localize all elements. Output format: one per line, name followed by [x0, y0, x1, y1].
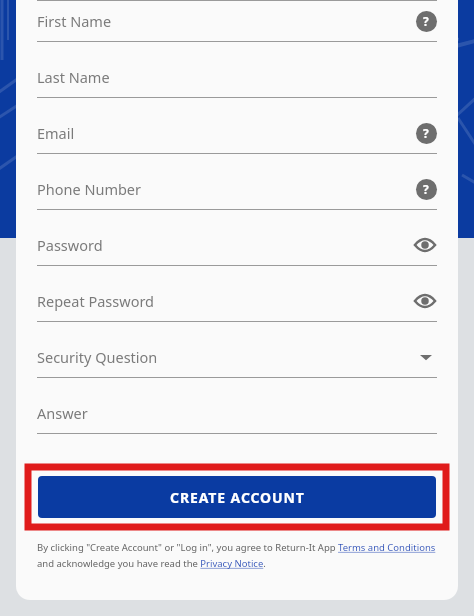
staticText: Phone Number [37, 179, 142, 199]
button[interactable]: First Name [16, 1, 458, 57]
button[interactable]: Phone Number [16, 169, 458, 225]
button[interactable]: Show password [413, 289, 437, 313]
staticText: Last Name [37, 67, 110, 87]
button[interactable]: Help [415, 178, 437, 200]
staticText: Security Question [37, 347, 158, 367]
staticText: Email [37, 123, 75, 143]
staticText: ? [423, 125, 429, 141]
button[interactable]: Email [16, 113, 458, 169]
staticText: First Name [37, 11, 112, 31]
button[interactable]: Password [16, 225, 458, 281]
staticText: and acknowledge you have read the Privac… [37, 557, 266, 570]
staticText: ? [423, 181, 429, 197]
button[interactable]: Show password [413, 233, 437, 257]
button[interactable]: Answer [16, 393, 458, 449]
staticText: Repeat Password [37, 291, 155, 311]
button[interactable]: CREATE ACCOUNT [38, 476, 436, 518]
button[interactable]: Last Name [16, 57, 458, 113]
staticText: ? [423, 13, 429, 29]
staticText: By clicking "Create Account" or "Log in"… [37, 541, 436, 554]
staticText: Password [37, 235, 103, 255]
staticText: Answer [37, 403, 88, 423]
button[interactable]: Repeat Password [16, 281, 458, 337]
staticText: CREATE ACCOUNT [170, 488, 305, 507]
button[interactable]: Open dropdown [415, 346, 437, 368]
button[interactable]: Help [415, 122, 437, 144]
button[interactable]: Help [415, 10, 437, 32]
button[interactable]: Security Question [16, 337, 458, 393]
